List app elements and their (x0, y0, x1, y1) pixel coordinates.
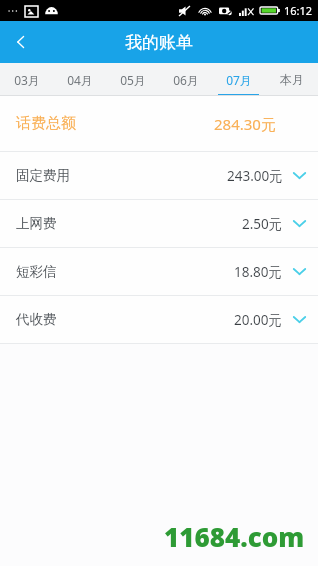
button[interactable]: 代收费 (0, 296, 318, 343)
button[interactable]: Back (0, 21, 42, 63)
staticText: 284.30元 (214, 114, 276, 134)
staticText: 16:12 (284, 3, 313, 18)
staticText: 243.00元 (227, 167, 283, 185)
staticText: 03月 (14, 72, 40, 88)
staticText: 上网费 (16, 215, 57, 232)
staticText: 我的账单 (125, 32, 193, 53)
button[interactable]: 上网费 (0, 200, 318, 247)
button[interactable]: 03月 (0, 63, 53, 96)
staticText: 06月 (173, 72, 199, 88)
button[interactable]: 05月 (106, 63, 159, 96)
staticText: 04月 (67, 72, 93, 88)
staticText: 18.80元 (234, 263, 283, 281)
button[interactable]: 04月 (53, 63, 106, 96)
staticText: 07月 (226, 72, 252, 88)
button[interactable]: 07月 (212, 63, 265, 96)
staticText: 本月 (280, 72, 304, 87)
staticText: 代收费 (16, 311, 57, 328)
button[interactable]: 固定费用 (0, 152, 318, 199)
button[interactable]: 短彩信 (0, 248, 318, 295)
button[interactable]: 06月 (159, 63, 212, 96)
staticText: 短彩信 (16, 263, 57, 280)
button[interactable]: 话费总额 (0, 96, 318, 151)
staticText: 05月 (120, 72, 146, 88)
staticText: 2.50元 (242, 215, 283, 233)
staticText: 20.00元 (234, 311, 283, 329)
staticText: 11684.com (164, 519, 305, 554)
button[interactable]: 本月 (265, 63, 318, 96)
staticText: 话费总额 (16, 114, 76, 133)
staticText: 固定费用 (16, 167, 70, 184)
